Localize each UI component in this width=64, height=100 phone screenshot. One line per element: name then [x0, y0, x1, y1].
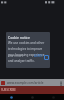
staticText: AGREE: [34, 54, 43, 58]
staticText: We use cookies and other technologies to…: [8, 41, 48, 63]
button[interactable]: Settings: [44, 55, 49, 60]
staticText: SUBSCRIBE: [1, 88, 16, 92]
button[interactable]: Home: [22, 94, 43, 100]
button[interactable]: More options: [59, 81, 63, 85]
button[interactable]: AGREE: [33, 54, 44, 58]
button[interactable]: www.example.com/article: [0, 79, 64, 86]
staticText: Learn more: [8, 54, 24, 58]
button[interactable]: Back: [0, 94, 22, 100]
staticText: www.example.com/article: [7, 81, 59, 85]
staticText: Cookie notice: [8, 35, 30, 40]
button[interactable]: Cookie notice: [6, 32, 50, 68]
